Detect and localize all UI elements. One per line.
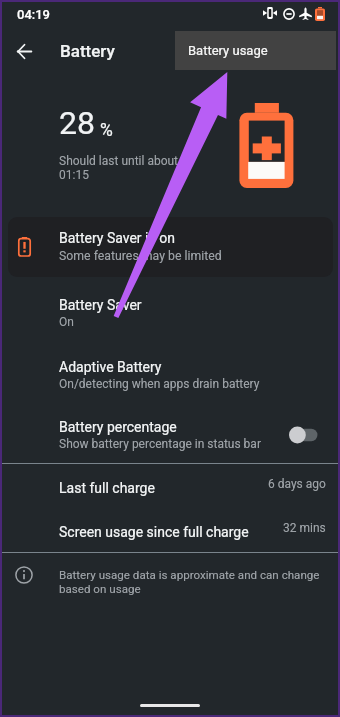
staticText: Battery usage — [188, 43, 268, 58]
staticText: On — [59, 315, 74, 329]
staticText: Battery Saver — [59, 297, 142, 313]
button[interactable]: Last full charge — [0, 466, 340, 502]
button[interactable]: Battery usage — [175, 31, 336, 70]
staticText: Last full charge — [59, 480, 155, 496]
button[interactable]: Battery Saver is on — [8, 217, 333, 277]
button[interactable]: Adaptive Battery — [0, 345, 340, 401]
staticText: On/detecting when apps drain battery — [59, 377, 260, 391]
button[interactable]: Battery percentage — [0, 405, 340, 457]
staticText: Battery — [60, 41, 115, 61]
staticText: Screen usage since full charge — [59, 524, 249, 540]
staticText: Battery percentage — [59, 419, 177, 435]
staticText: Show battery percentage in status bar — [59, 437, 261, 451]
staticText: Some features may be limited — [59, 249, 222, 263]
staticText: 6 days ago — [268, 477, 326, 491]
staticText: 04:19 — [17, 7, 50, 22]
staticText: 32 mins — [283, 521, 326, 535]
staticText: Battery Saver is on — [59, 230, 175, 246]
staticText: % — [100, 120, 113, 141]
staticText: Should last until about 01:15 — [59, 154, 179, 182]
staticText: 28 — [59, 104, 95, 142]
button[interactable]: Battery Saver — [0, 283, 340, 339]
button[interactable]: Screen usage since full charge — [0, 510, 340, 546]
button[interactable]: Back — [6, 33, 42, 69]
staticText: Battery usage data is approximate and ca… — [59, 568, 320, 596]
staticText: Adaptive Battery — [59, 359, 162, 375]
